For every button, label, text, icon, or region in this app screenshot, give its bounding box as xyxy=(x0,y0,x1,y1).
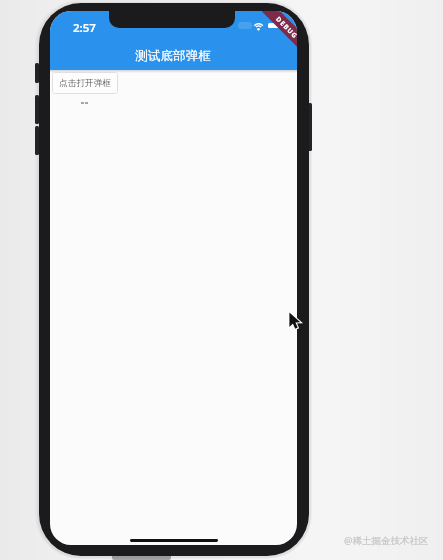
staticText: 点击打开弹框 xyxy=(59,78,112,89)
staticText: DEBUG xyxy=(274,14,297,41)
staticText: 2:57 xyxy=(73,20,96,36)
button[interactable]: 点击打开弹框 xyxy=(52,72,118,94)
staticText: 测试底部弹框 xyxy=(135,48,212,64)
staticText: @稀土掘金技术社区 xyxy=(344,534,429,547)
